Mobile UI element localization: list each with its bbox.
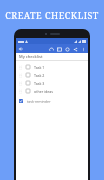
button[interactable]: Add image	[55, 45, 63, 53]
button[interactable]: Share	[71, 45, 79, 53]
button[interactable]: Back	[16, 44, 25, 53]
button[interactable]: More options	[79, 45, 87, 53]
button[interactable]: task reminder	[16, 97, 88, 105]
staticText: My checklist	[19, 54, 43, 59]
staticText: other ideas	[34, 89, 54, 94]
button[interactable]: Task 2	[16, 71, 88, 79]
button[interactable]: Task 1	[16, 63, 88, 71]
button[interactable]: Colour	[63, 45, 71, 53]
staticText: Task 2	[34, 73, 45, 78]
staticText: CREATE CHECKLIST	[0, 9, 104, 21]
button[interactable]: Task 3	[16, 79, 88, 87]
staticText: Task 1	[34, 65, 45, 70]
button[interactable]: other ideas	[16, 87, 88, 95]
button[interactable]: My checklist	[16, 53, 88, 60]
staticText: task reminder	[27, 99, 51, 104]
staticText: Task 3	[34, 81, 45, 86]
button[interactable]: Undo	[47, 45, 55, 53]
